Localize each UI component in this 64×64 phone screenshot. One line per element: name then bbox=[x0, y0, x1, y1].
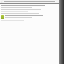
button[interactable]: Category colour bbox=[1, 15, 58, 19]
button[interactable]: Category colour bbox=[1, 15, 4, 19]
button[interactable] bbox=[1, 7, 58, 8]
button[interactable]: Back bbox=[0, 0, 59, 3]
button[interactable] bbox=[1, 20, 58, 21]
button[interactable] bbox=[1, 9, 58, 10]
button[interactable] bbox=[1, 11, 58, 12]
button[interactable]: Back bbox=[1, 1, 3, 3]
button[interactable] bbox=[1, 5, 58, 6]
button[interactable] bbox=[1, 13, 58, 14]
